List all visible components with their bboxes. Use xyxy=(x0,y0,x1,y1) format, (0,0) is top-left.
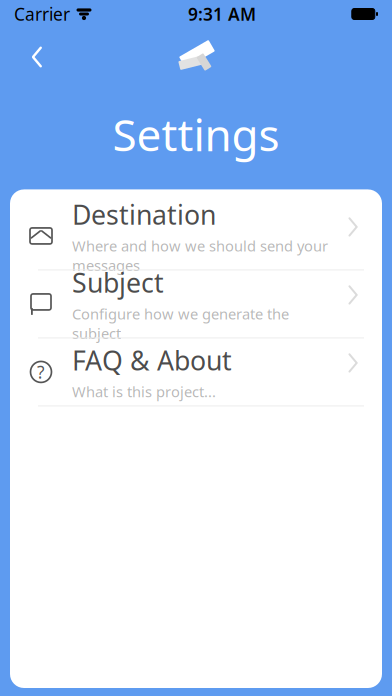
staticText: What is this project... xyxy=(72,382,216,401)
staticText: 9:31 AM xyxy=(188,2,256,25)
staticText: Destination xyxy=(72,197,216,232)
staticText: ? xyxy=(37,360,45,383)
staticText: FAQ & About xyxy=(72,342,232,378)
staticText: Configure how we generate the subject xyxy=(72,304,289,343)
staticText: Subject xyxy=(72,265,164,300)
staticText: Carrier xyxy=(14,2,70,25)
staticText: Settings xyxy=(112,105,279,163)
staticText: Where and how we should send your messag… xyxy=(72,236,328,275)
button[interactable]: Back xyxy=(15,35,59,79)
button[interactable]: Subject xyxy=(10,270,382,338)
button[interactable]: ? xyxy=(10,338,382,406)
button[interactable]: Destination xyxy=(10,202,382,270)
